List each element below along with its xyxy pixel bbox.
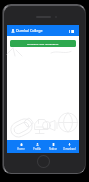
other: More options [69,29,75,33]
button[interactable]: Profile [29,140,45,153]
staticText: Profile [33,147,41,151]
staticText: Home [17,147,25,151]
button[interactable]: Dumkal College [7,25,79,36]
staticText: Notice [49,147,57,151]
button[interactable]: Download [61,140,77,153]
button[interactable]: Home [13,140,29,153]
staticText: Download [63,147,76,151]
button[interactable]: Notice [45,140,61,153]
staticText: Dumkal College [16,28,43,33]
staticText: Complete Your Application [27,42,59,45]
button[interactable]: Complete Your Application [10,40,76,47]
